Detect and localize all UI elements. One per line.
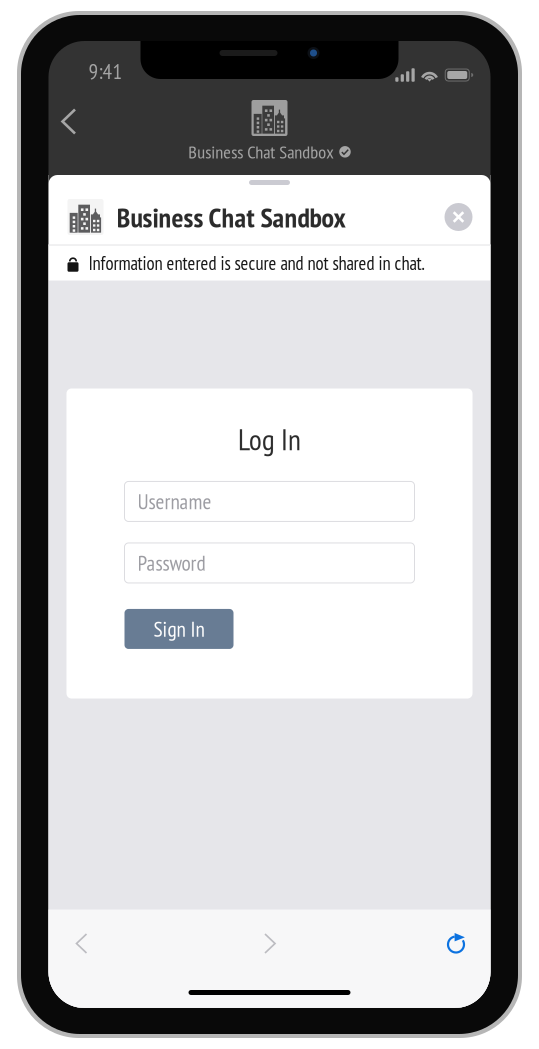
staticText: Business Chat Sandbox <box>116 199 345 235</box>
staticText: 9:41 <box>88 57 122 85</box>
staticText: Password <box>137 549 205 577</box>
button[interactable]: Close <box>444 203 472 231</box>
button[interactable]: Back <box>48 99 91 144</box>
staticText: Sign In <box>153 615 204 643</box>
button[interactable]: Forward <box>240 921 300 965</box>
staticText: Username <box>137 488 211 515</box>
button[interactable]: Back <box>51 921 111 965</box>
staticText: Log In <box>238 420 301 458</box>
button[interactable]: Reload <box>426 921 486 965</box>
staticText: Information entered is secure and not sh… <box>88 251 424 275</box>
staticText: Business Chat Sandbox <box>188 140 334 164</box>
button[interactable]: Sign In <box>124 609 233 649</box>
